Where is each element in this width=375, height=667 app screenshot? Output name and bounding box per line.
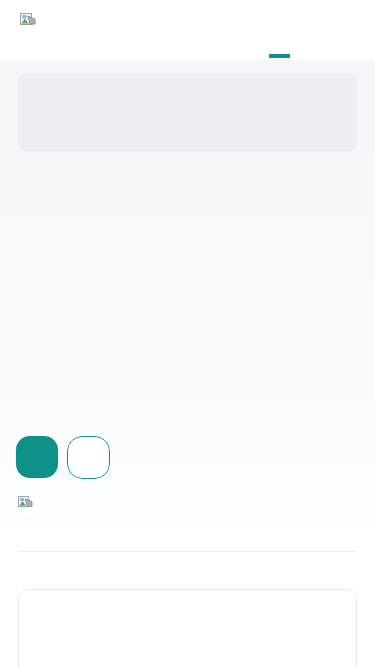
button[interactable]: Avatar [18, 496, 32, 510]
button[interactable]: Primary action [16, 436, 58, 478]
button[interactable]: Logo [20, 13, 36, 29]
button[interactable]: Secondary action [67, 436, 110, 479]
button[interactable] [18, 589, 357, 667]
